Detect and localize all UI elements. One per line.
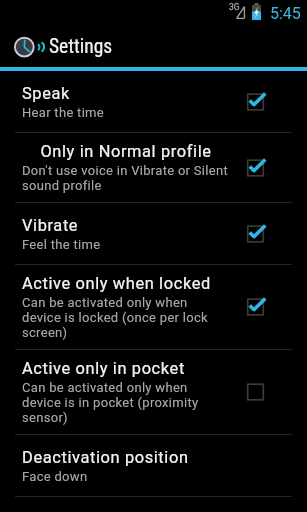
staticText: Don't use voice in Vibrate or Silent sou… xyxy=(22,163,230,193)
staticText: Deactivation position xyxy=(22,448,230,467)
staticText: Only in Normal profile xyxy=(22,142,230,161)
staticText: Face down xyxy=(22,469,88,484)
staticText: Active only in pocket xyxy=(22,359,230,378)
staticText: Feel the time xyxy=(22,237,101,252)
button[interactable]: Active only in pocket xyxy=(0,350,307,434)
button[interactable]: Unchecked xyxy=(241,376,273,408)
button[interactable]: Vibrate xyxy=(0,203,307,264)
staticText: Can be activated only when device is in … xyxy=(22,380,230,425)
staticText: Can be activated only when device is loc… xyxy=(22,295,230,340)
button[interactable]: Deactivation position xyxy=(0,435,307,496)
staticText: Hear the time xyxy=(22,105,105,120)
button[interactable]: Only in Normal profile xyxy=(0,133,307,202)
button[interactable]: Checked xyxy=(241,152,273,184)
staticText: 5:45 xyxy=(270,4,301,23)
button[interactable]: Active only when locked xyxy=(0,265,307,349)
button[interactable]: Checked xyxy=(241,291,273,323)
button[interactable]: Checked xyxy=(241,86,273,118)
staticText: Vibrate xyxy=(22,216,230,235)
staticText: Active only when locked xyxy=(22,274,230,293)
other: App icon xyxy=(10,31,41,60)
staticText: Speak xyxy=(22,84,230,103)
button[interactable]: App icon xyxy=(0,24,307,67)
staticText: 3G xyxy=(229,2,240,12)
staticText: Settings xyxy=(49,35,113,58)
button[interactable]: Speak xyxy=(0,71,307,132)
button[interactable]: Checked xyxy=(241,218,273,250)
